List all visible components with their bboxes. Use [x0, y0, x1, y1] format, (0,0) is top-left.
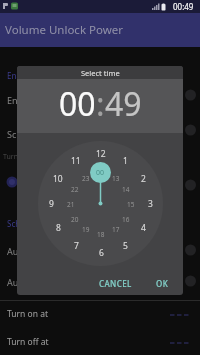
staticText: :: [96, 82, 105, 122]
button[interactable]: CANCEL: [87, 273, 143, 294]
staticText: 19: [82, 225, 90, 234]
button[interactable]: OK: [145, 273, 179, 294]
staticText: 7: [74, 240, 79, 252]
button[interactable]: Turn off at: [0, 330, 200, 355]
staticText: Screen off: [7, 128, 50, 140]
button[interactable]: Turn on at: [0, 302, 200, 328]
staticText: 12: [96, 148, 106, 160]
staticText: 16: [122, 215, 130, 224]
staticText: CANCEL: [99, 278, 132, 289]
staticText: 15: [127, 200, 135, 209]
staticText: 21: [67, 200, 75, 209]
staticText: 17: [112, 225, 120, 234]
staticText: Enable volume unlock: [7, 94, 100, 106]
staticText: 3: [148, 198, 153, 210]
staticText: 11: [71, 155, 81, 167]
staticText: 8: [56, 222, 61, 234]
staticText: 18: [97, 230, 105, 239]
staticText: 49: [105, 82, 142, 122]
staticText: 9: [49, 198, 54, 210]
staticText: 1: [123, 155, 128, 167]
staticText: 4: [141, 222, 146, 234]
staticText: Schedule: [7, 218, 42, 229]
staticText: 00: [96, 168, 105, 178]
staticText: 22: [71, 185, 79, 194]
staticText: 2: [141, 173, 146, 185]
staticText: 5: [123, 240, 128, 252]
staticText: OK: [156, 278, 169, 289]
staticText: Auto turn off: [7, 276, 62, 288]
staticText: 00:49: [173, 1, 194, 12]
staticText: 20: [71, 215, 79, 224]
staticText: Turn off at: [7, 336, 49, 348]
staticText: 14: [122, 185, 130, 194]
staticText: Select time: [81, 68, 120, 78]
staticText: 00: [59, 82, 96, 122]
staticText: Turn on at: [7, 308, 48, 320]
staticText: 6: [99, 247, 104, 259]
staticText: Enable: [7, 70, 33, 81]
staticText: 10: [53, 173, 63, 185]
staticText: 23: [82, 174, 90, 183]
staticText: 13: [112, 174, 120, 183]
staticText: Auto turn on: [7, 245, 61, 257]
staticText: Turn the screen off: [3, 152, 66, 162]
staticText: Volume Unlock Power: [5, 22, 123, 38]
